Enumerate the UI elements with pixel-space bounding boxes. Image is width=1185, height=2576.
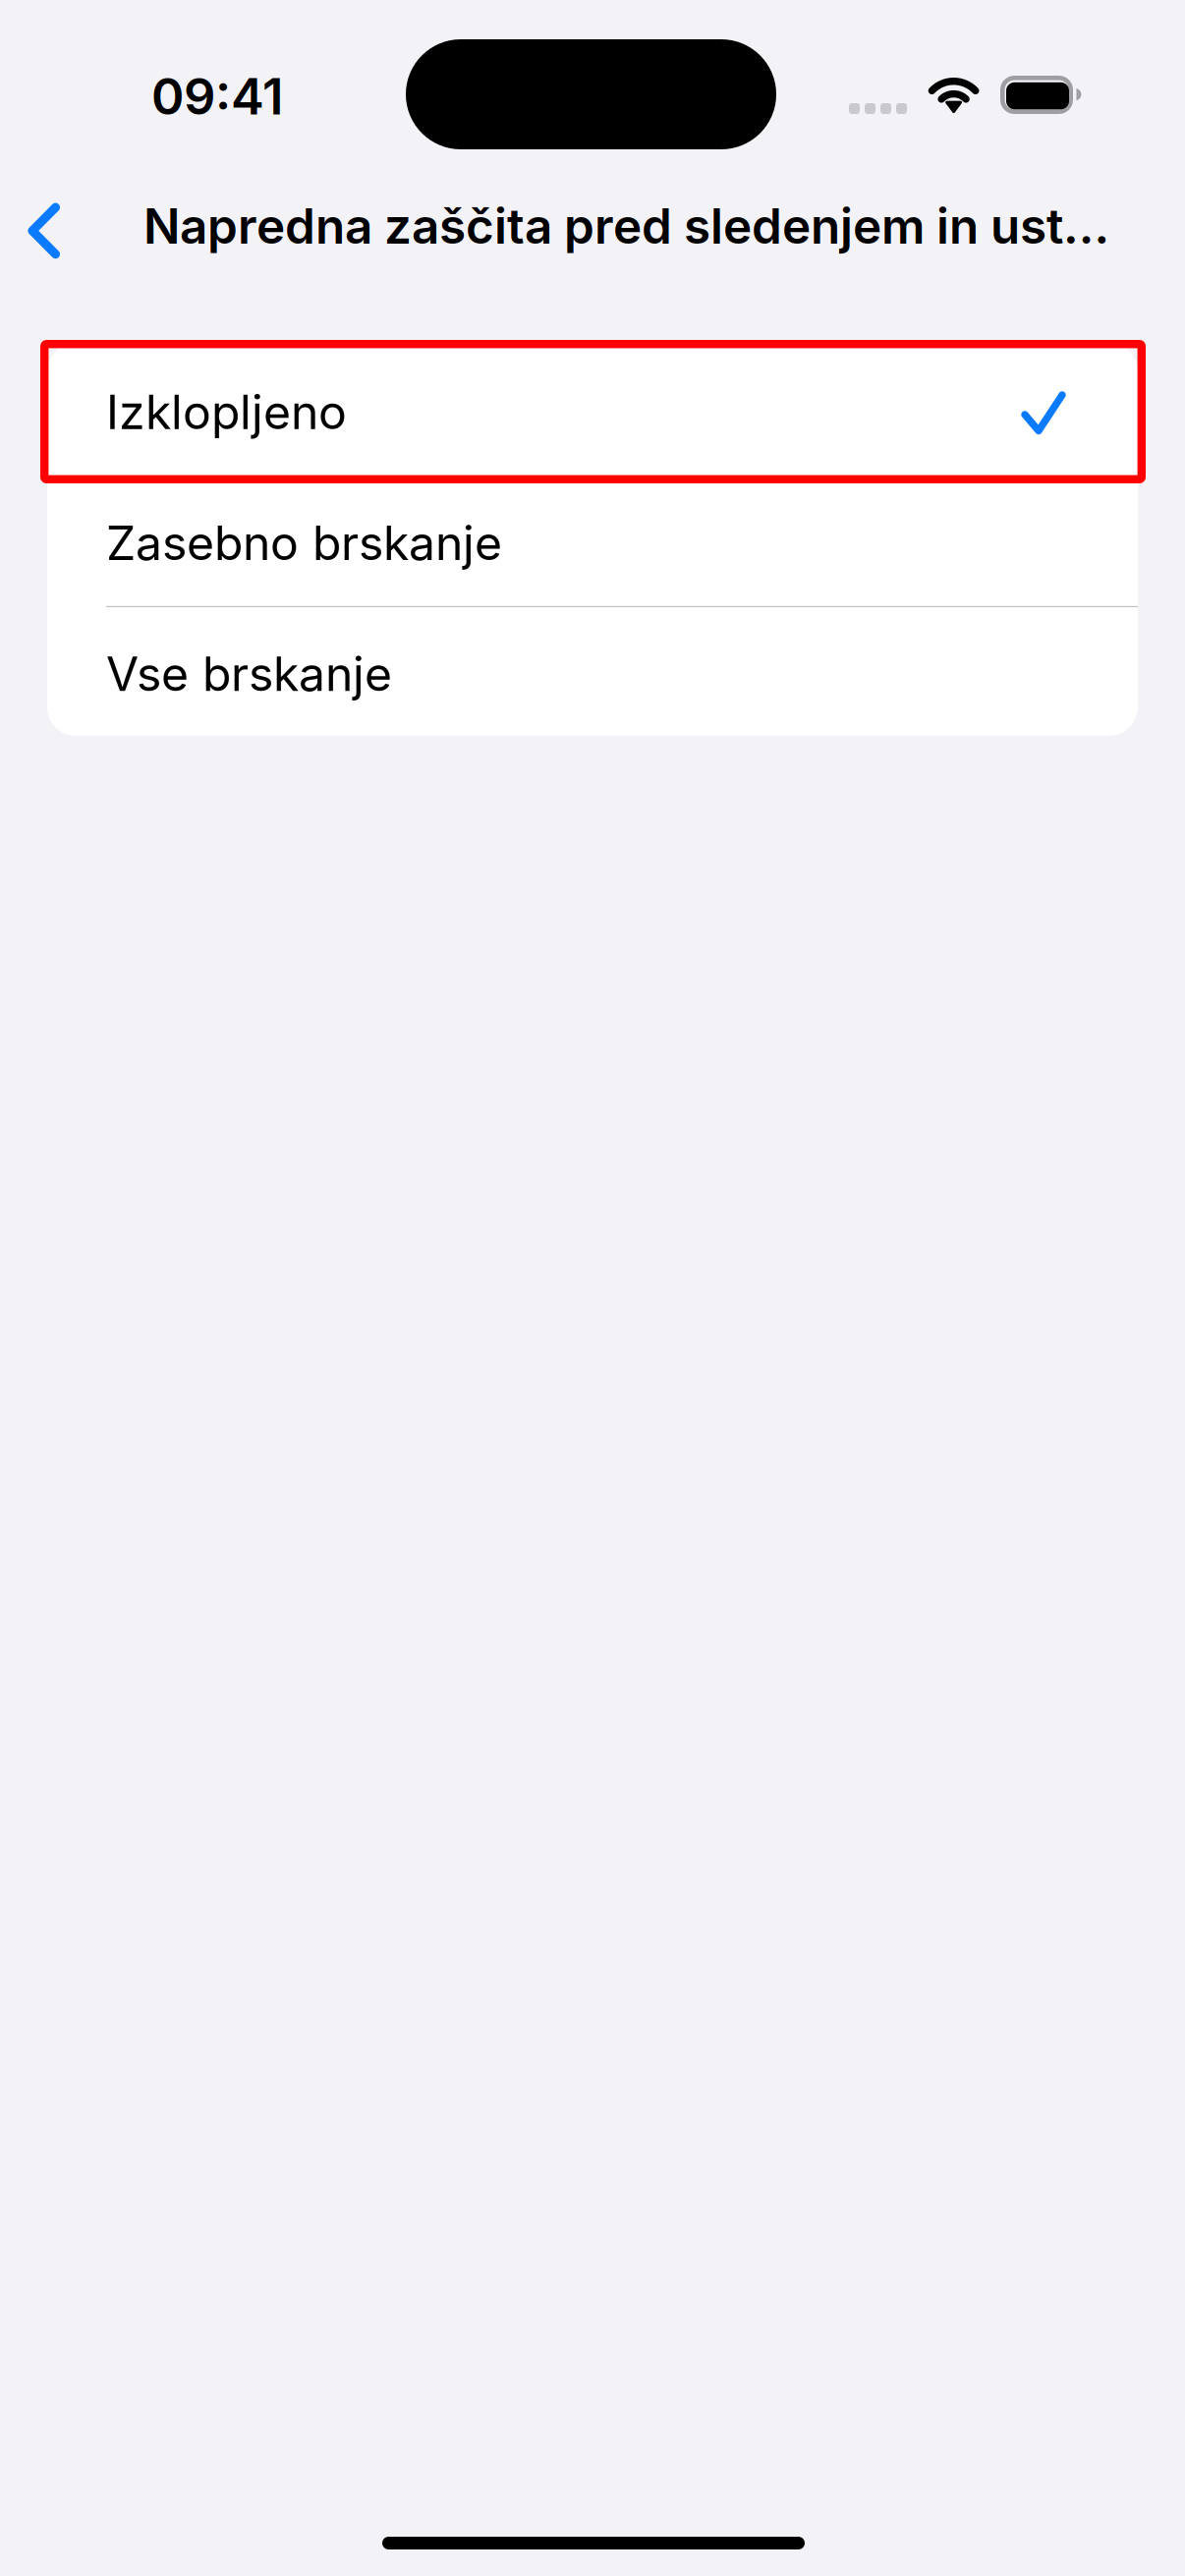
staticText: Izklopljeno <box>106 384 347 440</box>
staticText: 09:41 <box>151 67 283 126</box>
staticText: Napredna zaščita pred sledenjem in ust… <box>143 197 1109 255</box>
button[interactable]: Izklopljeno <box>47 343 1138 474</box>
button[interactable]: Vse brskanje <box>47 605 1138 736</box>
button[interactable]: Back <box>0 177 102 285</box>
button[interactable]: Zasebno brskanje <box>47 474 1138 605</box>
staticText: Zasebno brskanje <box>106 515 502 571</box>
staticText: Vse brskanje <box>106 646 392 702</box>
